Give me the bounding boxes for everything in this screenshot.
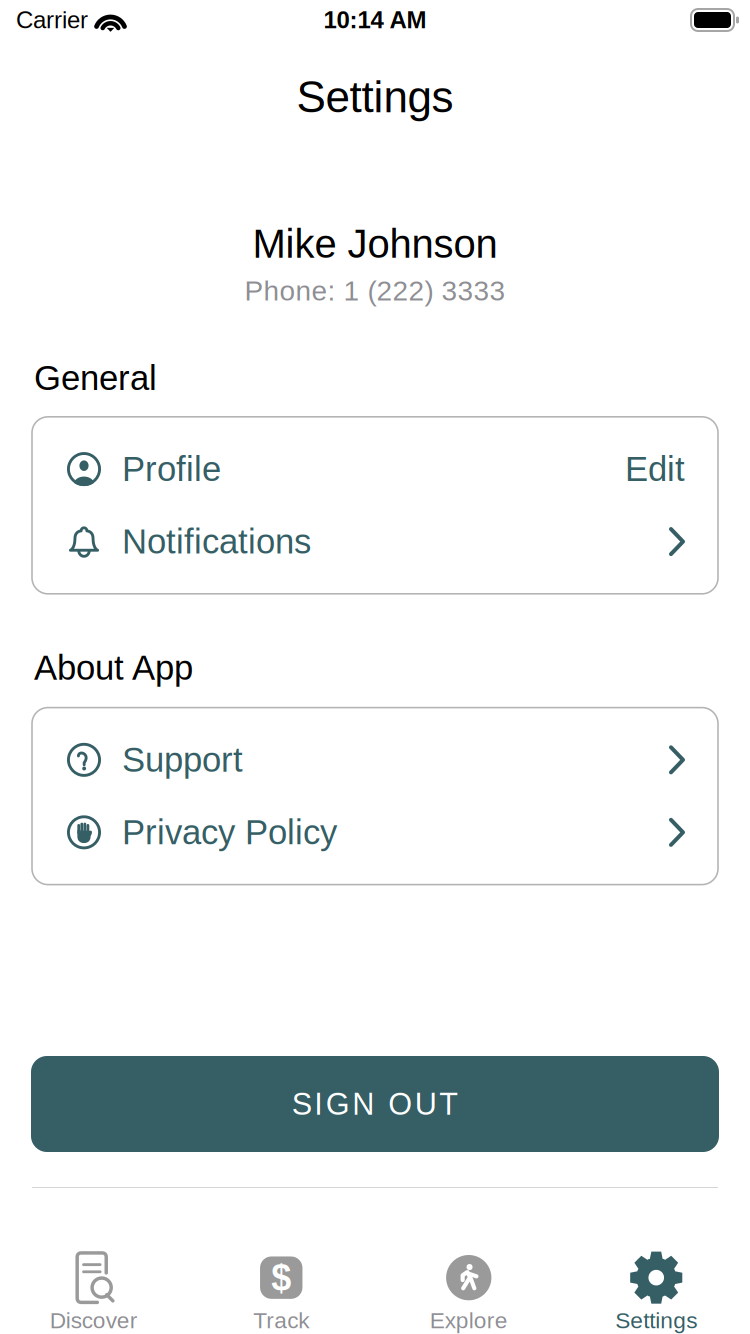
button[interactable]: Discover [0, 1251, 187, 1333]
button[interactable]: $ [187, 1251, 375, 1333]
staticText: Settings [296, 73, 453, 121]
button[interactable]: Privacy Policy [32, 796, 718, 869]
staticText: About App [34, 649, 193, 687]
button[interactable]: Profile [32, 433, 718, 505]
button[interactable]: Notifications [32, 505, 718, 578]
staticText: Support [122, 741, 243, 779]
staticText: Carrier [16, 7, 88, 33]
staticText: Explore [430, 1308, 508, 1333]
button[interactable]: SIGN OUT [31, 1056, 719, 1152]
staticText: General [34, 359, 157, 397]
staticText: Settings [615, 1308, 697, 1333]
staticText: Edit [625, 450, 685, 488]
staticText: Discover [50, 1308, 138, 1333]
staticText: Privacy Policy [122, 813, 337, 851]
button[interactable]: Settings [562, 1251, 750, 1333]
staticText: $ [271, 1258, 291, 1297]
staticText: Track [253, 1308, 309, 1333]
staticText: Notifications [122, 523, 311, 560]
staticText: Phone: 1 (222) 3333 [244, 276, 505, 306]
staticText: Profile [122, 450, 221, 488]
button[interactable]: Support [32, 724, 718, 796]
staticText: 10:14 AM [323, 7, 426, 33]
staticText: SIGN OUT [292, 1087, 458, 1121]
staticText: Mike Johnson [252, 222, 497, 266]
button[interactable]: Explore [375, 1251, 562, 1333]
